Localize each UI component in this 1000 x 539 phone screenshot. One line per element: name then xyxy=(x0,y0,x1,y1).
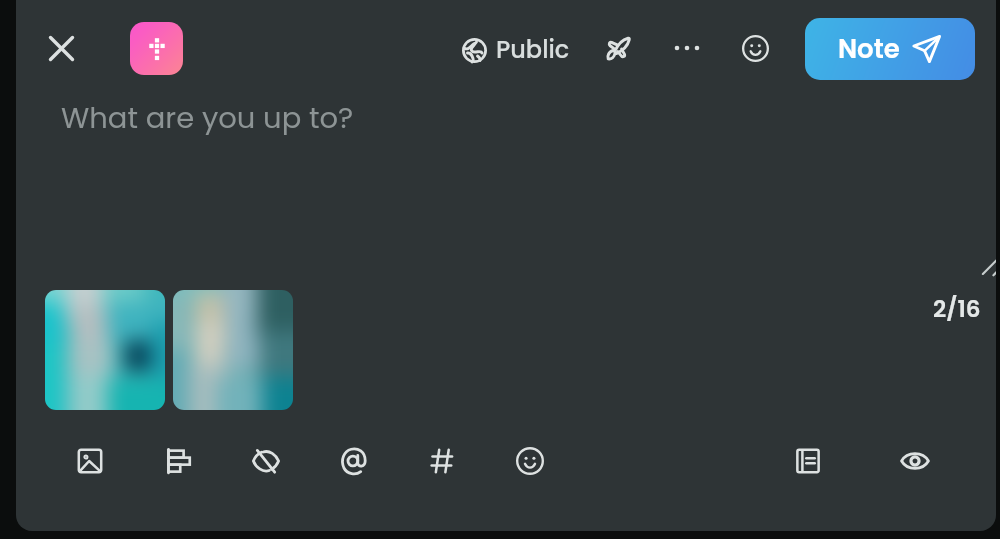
button[interactable]: Add image xyxy=(68,439,112,483)
button[interactable]: Add hashtag xyxy=(420,439,464,483)
button[interactable]: Attached image xyxy=(45,290,165,410)
button[interactable]: Note xyxy=(805,18,975,80)
button[interactable]: More options xyxy=(665,26,709,70)
staticText: Public xyxy=(496,33,570,67)
button[interactable]: Emoji xyxy=(508,439,552,483)
button[interactable]: Close xyxy=(39,26,83,70)
button[interactable]: Public xyxy=(456,26,576,74)
staticText: What are you up to? xyxy=(61,98,354,139)
staticText: 2/16 xyxy=(933,293,981,325)
button[interactable]: Mention someone xyxy=(332,439,376,483)
button[interactable]: Emoji xyxy=(733,26,777,70)
button[interactable]: Drafts xyxy=(786,439,830,483)
button[interactable]: Attached image xyxy=(173,290,293,410)
button[interactable]: Boost xyxy=(596,26,640,70)
button[interactable]: Poll xyxy=(156,439,200,483)
button[interactable]: Content warning xyxy=(244,439,288,483)
button[interactable]: Preview xyxy=(893,439,937,483)
staticText: Note xyxy=(838,31,900,67)
button[interactable]: Account xyxy=(130,22,183,75)
